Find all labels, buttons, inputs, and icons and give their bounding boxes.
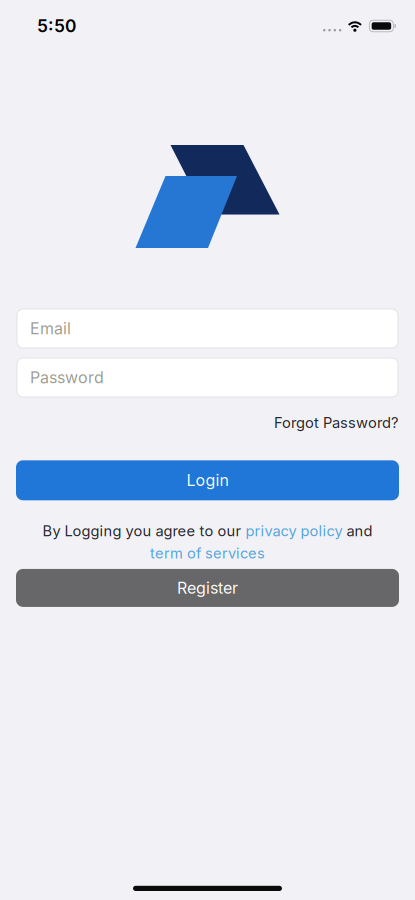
staticText: Email <box>30 319 71 338</box>
staticText: 5:50 <box>37 16 76 36</box>
staticText: Password <box>30 368 104 387</box>
staticText: Login <box>186 471 228 490</box>
button[interactable]: Register <box>16 569 399 607</box>
button[interactable]: Login <box>16 460 399 500</box>
button[interactable]: term of services <box>150 545 265 562</box>
textField[interactable]: Email <box>30 319 398 338</box>
secureTextField[interactable]: Password <box>30 368 398 387</box>
staticText: and <box>346 522 372 540</box>
button[interactable]: privacy policy <box>245 522 342 540</box>
staticText: Register <box>177 578 238 597</box>
staticText: privacy policy <box>245 522 342 540</box>
button[interactable]: Forgot Password? <box>274 414 398 431</box>
staticText: Forgot Password? <box>274 414 398 431</box>
staticText: term of services <box>150 545 265 562</box>
staticText: By Logging you agree to our <box>42 522 241 540</box>
